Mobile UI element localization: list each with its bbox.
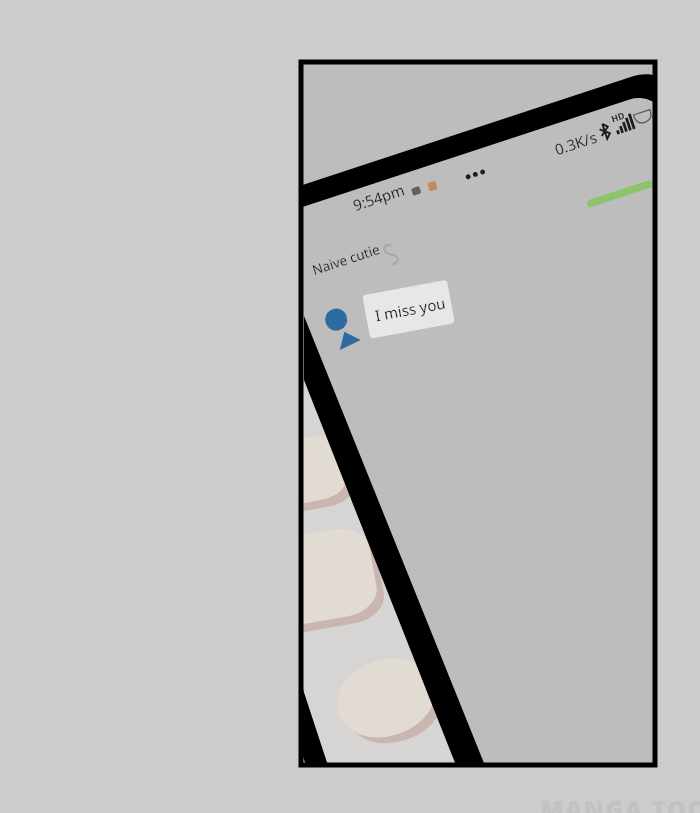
button[interactable]: Comic panel: phone chat screen (0, 0, 700, 813)
